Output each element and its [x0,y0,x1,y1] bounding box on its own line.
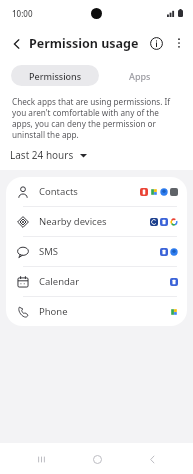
staticText: Apps [129,70,151,82]
button[interactable]: Information [144,31,168,55]
button[interactable]: Back [137,444,167,474]
button[interactable]: More options [168,32,190,54]
button[interactable]: Back [5,32,28,55]
button[interactable]: Last 24 hours [8,145,89,165]
staticText: 10:00 [12,8,33,19]
staticText: Phone [39,305,170,318]
button[interactable]: Nearby devices [6,207,187,236]
button[interactable]: SMS [6,237,187,266]
button[interactable]: Contacts [6,177,187,206]
staticText: Nearby devices [39,215,150,228]
staticText: Contacts [39,185,140,198]
staticText: Check apps that are using permissions. I… [12,96,180,140]
staticText: Permission usage [29,35,139,52]
staticText: Calendar [39,275,170,288]
staticText: Last 24 hours [10,148,74,162]
button[interactable]: Calendar [6,267,187,296]
button[interactable]: Permissions [11,65,99,86]
button[interactable]: Phone [6,297,187,326]
button[interactable]: Apps [99,65,181,86]
staticText: SMS [39,245,160,258]
button[interactable]: Home [82,444,112,474]
staticText: Permissions [29,70,82,82]
button[interactable]: Recent apps [26,444,56,474]
